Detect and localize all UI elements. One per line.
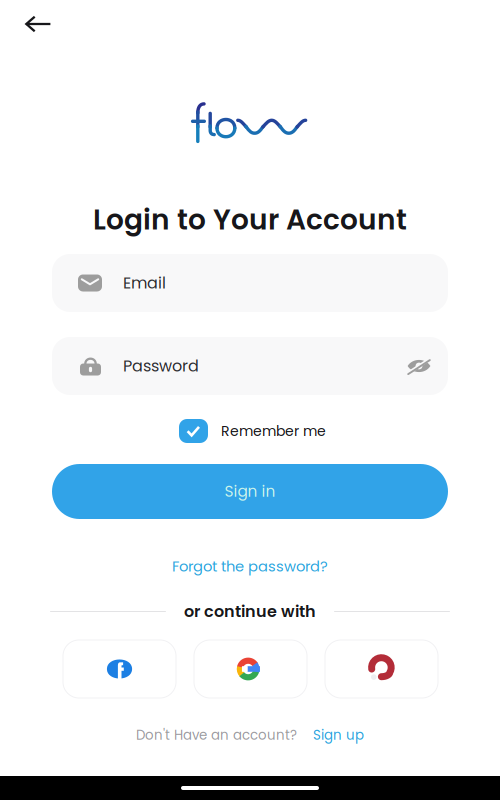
button[interactable]: Back — [8, 2, 60, 46]
staticText: Sign up — [313, 726, 364, 744]
staticText: Remember me — [221, 421, 326, 441]
staticText: Email — [123, 272, 166, 294]
button[interactable]: Remember me — [179, 419, 326, 443]
button[interactable]: Sign in — [52, 464, 448, 519]
staticText: Don't Have an account? — [136, 726, 297, 744]
button[interactable]: Continue with Facebook — [63, 640, 176, 698]
staticText: Forgot the password? — [172, 556, 328, 576]
staticText: Password — [123, 355, 199, 377]
button[interactable]: Sign up — [313, 726, 364, 744]
button[interactable]: Continue with Google — [194, 640, 307, 698]
button[interactable]: Continue with Flow — [325, 640, 438, 698]
staticText: or continue with — [184, 600, 316, 623]
button[interactable]: Show password — [407, 358, 431, 373]
staticText: Sign in — [224, 481, 275, 502]
staticText: Login to Your Account — [93, 200, 407, 239]
button[interactable]: Forgot the password? — [172, 556, 328, 576]
